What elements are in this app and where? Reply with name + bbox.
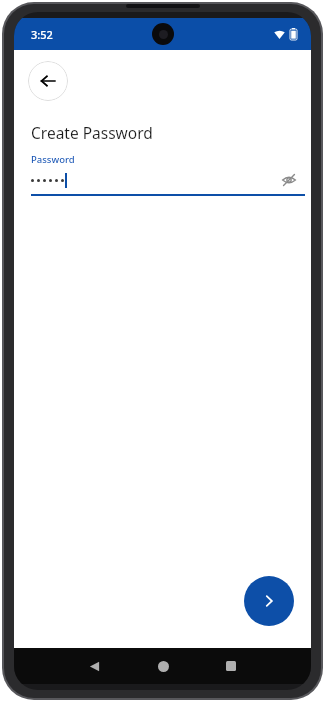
button[interactable]: Show password — [14, 169, 311, 191]
button[interactable]: Show password — [277, 169, 301, 191]
button[interactable]: Next — [244, 576, 294, 626]
button[interactable]: Home — [129, 648, 197, 684]
button[interactable]: Back — [28, 61, 68, 101]
staticText: Create Password — [31, 122, 153, 143]
staticText: 3:52 — [31, 27, 53, 42]
staticText: Password — [31, 153, 75, 166]
button[interactable]: Back — [60, 648, 129, 684]
button[interactable]: Recent apps — [197, 648, 265, 684]
